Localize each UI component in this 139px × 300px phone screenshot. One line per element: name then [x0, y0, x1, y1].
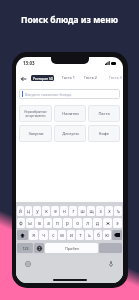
button[interactable]: ы [26, 218, 34, 228]
staticText: м [60, 232, 64, 238]
button[interactable]: и [67, 230, 75, 240]
staticText: Закуски [28, 131, 44, 136]
staticText: н [63, 208, 66, 214]
staticText: Ресторан (4) [33, 76, 53, 81]
button[interactable]: о [73, 218, 82, 228]
button[interactable]: Emoji [23, 259, 33, 269]
button[interactable]: Shift [17, 230, 28, 240]
button[interactable]: ф [17, 218, 25, 228]
staticText: Неразобранные ассортименты [24, 110, 47, 118]
button[interactable]: Backspace [112, 230, 122, 240]
staticText: д [96, 220, 99, 226]
staticText: ш [80, 208, 85, 214]
button[interactable]: Ресторан (4) [31, 75, 54, 81]
button[interactable]: т [76, 230, 84, 240]
staticText: и [70, 232, 73, 238]
staticText: ю [105, 232, 109, 238]
staticText: э [116, 220, 119, 226]
staticText: Пробел [65, 246, 79, 251]
staticText: Введите название блюда [25, 92, 72, 97]
button[interactable]: Кофе [88, 125, 120, 142]
button[interactable]: Back [19, 74, 28, 83]
staticText: е [54, 208, 57, 214]
staticText: ф [19, 220, 23, 226]
staticText: й [19, 208, 22, 214]
staticText: т [79, 232, 82, 238]
staticText: ч [42, 232, 45, 238]
button[interactable]: й [17, 206, 24, 216]
button[interactable]: к [42, 206, 50, 216]
staticText: Напитки [62, 111, 79, 116]
staticText: а [47, 220, 50, 226]
button[interactable]: в [35, 218, 43, 228]
staticText: Десерты [62, 131, 79, 136]
staticText: ъ [117, 208, 120, 214]
button[interactable]: Пробел [45, 243, 98, 253]
button[interactable]: н [60, 206, 68, 216]
staticText: 13:03 [23, 60, 35, 66]
button[interactable]: ъ [114, 206, 122, 216]
button[interactable]: Гость 3 [109, 75, 122, 80]
staticText: п [56, 220, 59, 226]
staticText: в [38, 220, 41, 226]
button[interactable]: я [29, 230, 38, 240]
staticText: ж [106, 220, 110, 226]
staticText: с [52, 232, 55, 238]
button[interactable]: э [113, 218, 122, 228]
staticText: х [108, 208, 111, 214]
button[interactable]: 123 [17, 243, 33, 253]
staticText: р [66, 220, 69, 226]
staticText: ц [27, 208, 30, 214]
button[interactable]: м [58, 230, 66, 240]
staticText: л [86, 220, 89, 226]
button[interactable]: з [96, 206, 104, 216]
staticText: я [32, 232, 35, 238]
staticText: б [97, 232, 100, 238]
button[interactable]: ю [103, 230, 111, 240]
staticText: щ [89, 208, 94, 214]
staticText: к [45, 208, 48, 214]
button[interactable]: Паста [88, 105, 120, 122]
button[interactable]: а [44, 218, 52, 228]
button[interactable]: с [49, 230, 57, 240]
staticText: з [99, 208, 102, 214]
staticText: 123 [22, 246, 29, 251]
button[interactable]: ж [103, 218, 112, 228]
staticText: г [72, 208, 75, 214]
button[interactable]: л [83, 218, 92, 228]
staticText: Кофе [99, 131, 109, 136]
button[interactable]: Гость 2 [84, 75, 97, 80]
button[interactable]: р [63, 218, 72, 228]
button[interactable]: п [53, 218, 62, 228]
button[interactable]: Switch keyboard language [34, 243, 44, 253]
button[interactable]: д [93, 218, 102, 228]
button[interactable]: Закуски [19, 125, 52, 142]
button[interactable]: б [94, 230, 102, 240]
staticText: о [76, 220, 79, 226]
staticText: Паста [98, 111, 110, 116]
button[interactable]: х [105, 206, 113, 216]
button[interactable]: ч [39, 230, 48, 240]
button[interactable]: Неразобранные ассортименты [19, 105, 52, 122]
button[interactable]: Microphone [106, 259, 116, 269]
button[interactable]: г [69, 206, 77, 216]
staticText: ь [88, 232, 91, 238]
button[interactable]: Напитки [54, 105, 86, 122]
staticText: у [36, 208, 39, 214]
button[interactable]: е [51, 206, 59, 216]
button[interactable]: щ [87, 206, 95, 216]
button[interactable]: Десерты [54, 125, 86, 142]
button[interactable]: Введите название блюда [19, 89, 120, 99]
button[interactable]: у [33, 206, 41, 216]
button[interactable]: Гость 1 [62, 75, 75, 80]
button[interactable]: ц [25, 206, 32, 216]
staticText: ы [28, 220, 32, 226]
button[interactable]: ш [78, 206, 86, 216]
staticText: Поиск блюда из меню [0, 14, 139, 26]
button[interactable]: ь [85, 230, 93, 240]
